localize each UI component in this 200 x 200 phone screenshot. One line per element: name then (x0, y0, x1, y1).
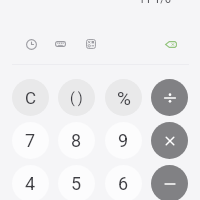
button[interactable]: Divide (151, 79, 188, 116)
staticText: 7 (25, 130, 36, 151)
button[interactable]: 5 (58, 165, 95, 200)
button[interactable]: C (12, 79, 49, 116)
staticText: 5 (71, 173, 82, 194)
staticText: % (117, 87, 131, 109)
button[interactable]: 4 (12, 165, 49, 200)
staticText: ( ) (70, 90, 83, 106)
staticText: 11·1/6 (138, 0, 171, 6)
staticText: 6 (118, 173, 129, 194)
button[interactable]: Scientific mode (78, 31, 104, 57)
staticText: C (25, 88, 37, 108)
button[interactable]: Multiply (151, 122, 188, 159)
button[interactable]: Subtract (151, 165, 188, 200)
button[interactable]: Backspace (158, 31, 184, 57)
button[interactable]: % (105, 79, 142, 116)
button[interactable]: 7 (12, 122, 49, 159)
staticText: 8 (71, 130, 82, 151)
button[interactable]: ( ) (58, 79, 95, 116)
button[interactable]: 6 (105, 165, 142, 200)
button[interactable]: History (18, 31, 44, 57)
staticText: 4 (25, 173, 36, 194)
button[interactable]: 8 (58, 122, 95, 159)
staticText: 9 (118, 130, 129, 151)
button[interactable]: 9 (105, 122, 142, 159)
button[interactable]: Keyboard (47, 31, 73, 57)
